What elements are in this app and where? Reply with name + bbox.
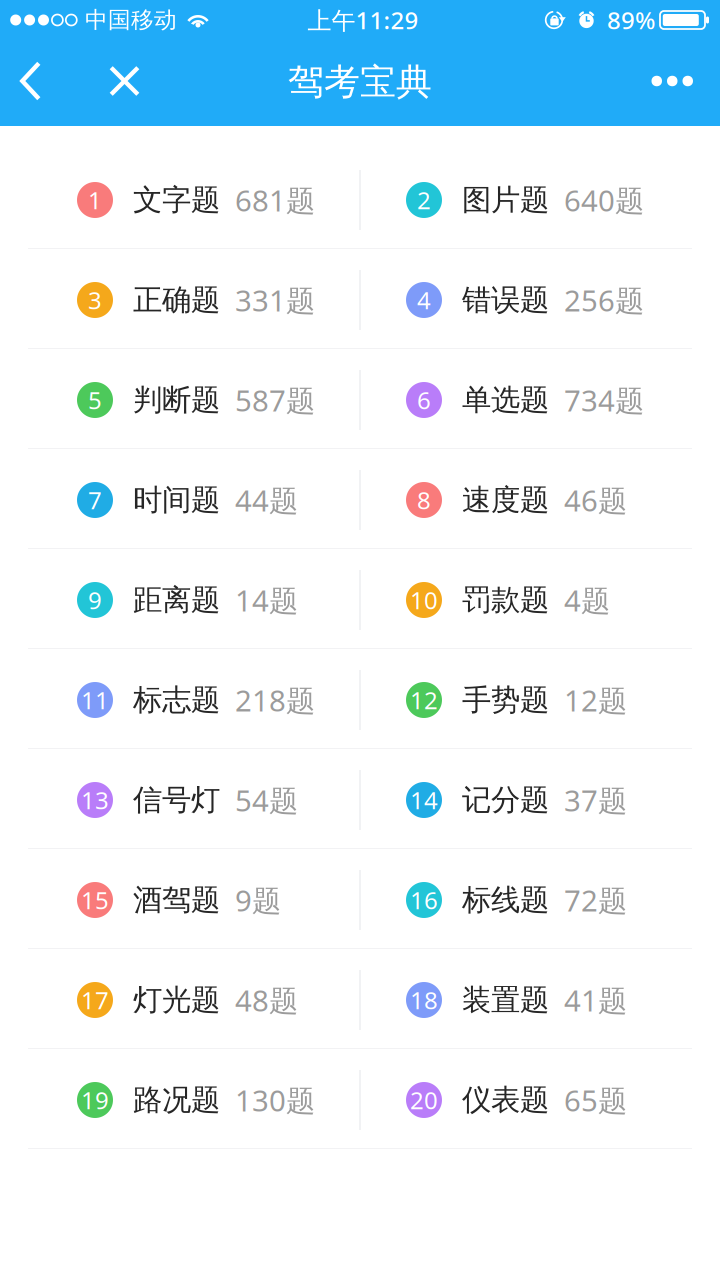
staticText: 9题 [235,880,281,919]
staticText: 16 [410,884,438,916]
button[interactable]: 14 [360,749,720,849]
staticText: 6 [417,384,431,416]
button[interactable]: 8 [360,449,720,549]
staticText: 48题 [235,980,298,1019]
staticText: 5 [88,384,102,416]
staticText: 10 [410,584,438,616]
staticText: 1 [88,184,102,216]
staticText: 记分题 [462,782,549,818]
button[interactable]: Close [89,44,160,126]
button[interactable]: More [627,44,720,126]
staticText: 上午11:29 [307,4,418,36]
button[interactable]: Back [0,44,89,126]
staticText: 331题 [235,280,315,319]
staticText: 装置题 [462,982,549,1018]
staticText: 14题 [235,580,298,619]
staticText: 仪表题 [462,1082,549,1118]
staticText: 驾考宝典 [288,60,432,104]
staticText: 错误题 [462,282,549,318]
staticText: 酒驾题 [133,882,220,918]
button[interactable]: 20 [360,1049,720,1149]
staticText: 54题 [235,780,298,819]
staticText: 15 [81,884,109,916]
staticText: 17 [81,984,109,1016]
staticText: 44题 [235,480,298,519]
staticText: 单选题 [462,382,549,418]
staticText: 37题 [564,780,627,819]
staticText: 46题 [564,480,627,519]
button[interactable]: 2 [360,149,720,249]
staticText: 判断题 [133,382,220,418]
staticText: 65题 [564,1080,627,1119]
staticText: 9 [88,584,102,616]
staticText: 灯光题 [133,982,220,1018]
staticText: 19 [81,1084,109,1116]
staticText: 路况题 [133,1082,220,1118]
staticText: 41题 [564,980,627,1019]
button[interactable]: 4 [360,249,720,349]
button[interactable]: 7 [0,449,360,549]
button[interactable]: 9 [0,549,360,649]
staticText: 罚款题 [462,582,549,618]
button[interactable]: 3 [0,249,360,349]
staticText: 7 [88,484,102,516]
staticText: 8 [417,484,431,516]
button[interactable]: 12 [360,649,720,749]
staticText: 4 [417,284,431,316]
staticText: 14 [410,784,438,816]
staticText: 2 [417,184,431,216]
button[interactable]: 10 [360,549,720,649]
staticText: 距离题 [133,582,220,618]
staticText: 12 [410,684,438,716]
button[interactable]: 6 [360,349,720,449]
staticText: 681题 [235,180,315,219]
button[interactable]: 18 [360,949,720,1049]
staticText: 130题 [235,1080,315,1119]
button[interactable]: 11 [0,649,360,749]
staticText: 640题 [564,180,644,219]
button[interactable]: 16 [360,849,720,949]
staticText: 734题 [564,380,644,419]
button[interactable]: 17 [0,949,360,1049]
staticText: 标志题 [133,682,220,718]
button[interactable]: 5 [0,349,360,449]
button[interactable]: 15 [0,849,360,949]
staticText: 手势题 [462,682,549,718]
staticText: 信号灯 [133,782,220,818]
staticText: 速度题 [462,482,549,518]
staticText: 218题 [235,680,315,719]
staticText: 时间题 [133,482,220,518]
staticText: 256题 [564,280,644,319]
staticText: 89% [607,4,655,36]
staticText: 12题 [564,680,627,719]
button[interactable]: 13 [0,749,360,849]
staticText: 正确题 [133,282,220,318]
button[interactable]: 19 [0,1049,360,1149]
staticText: 72题 [564,880,627,919]
staticText: 3 [88,284,102,316]
staticText: 20 [410,1084,438,1116]
staticText: 中国移动 [85,6,177,34]
staticText: 18 [410,984,438,1016]
staticText: 标线题 [462,882,549,918]
staticText: 4题 [564,580,610,619]
staticText: 图片题 [462,182,549,218]
button[interactable]: 1 [0,149,360,249]
staticText: 文字题 [133,182,220,218]
staticText: 11 [81,684,109,716]
staticText: 13 [81,784,109,816]
staticText: 587题 [235,380,315,419]
